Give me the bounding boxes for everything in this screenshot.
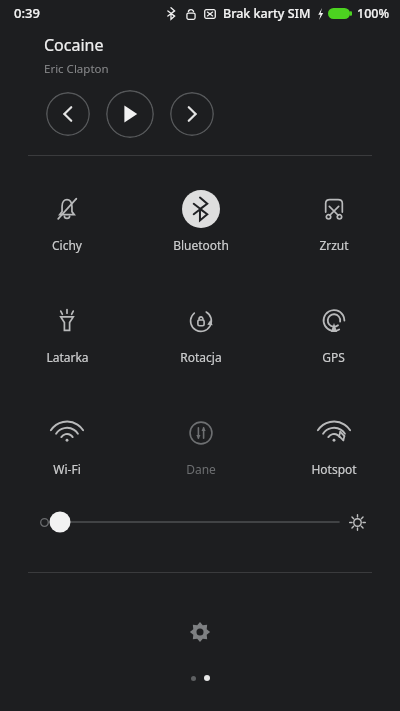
staticText: Hotspot — [311, 461, 357, 477]
button[interactable]: Hotspot — [267, 410, 400, 481]
button[interactable]: Dane — [134, 410, 267, 481]
staticText: Rotacja — [180, 349, 222, 365]
button[interactable]: Brightness — [40, 505, 366, 539]
button[interactable]: Previous — [46, 92, 90, 136]
button[interactable]: Play — [106, 90, 154, 138]
button[interactable]: Wi-Fi — [0, 410, 134, 481]
button[interactable]: Bluetooth — [134, 186, 267, 257]
other: Brightness — [349, 514, 366, 531]
button[interactable]: Latarka — [0, 298, 134, 369]
staticText: Cichy — [52, 237, 82, 253]
staticText: Dane — [186, 461, 216, 477]
button[interactable]: Zrzut — [267, 186, 400, 257]
button[interactable]: Cichy — [0, 186, 134, 257]
staticText: Brak karty SIM — [223, 5, 311, 22]
staticText: Wi-Fi — [53, 461, 81, 477]
staticText: Bluetooth — [173, 237, 229, 253]
staticText: Zrzut — [319, 237, 349, 253]
button[interactable]: Settings — [183, 615, 217, 649]
staticText: Latarka — [46, 349, 89, 365]
button[interactable]: GPS — [267, 298, 400, 369]
staticText: Cocaine — [44, 34, 104, 56]
button[interactable]: Next — [170, 92, 214, 136]
staticText: 100% — [357, 5, 390, 22]
staticText: 0:39 — [14, 4, 40, 22]
staticText: GPS — [322, 349, 345, 365]
button[interactable]: Rotacja — [134, 298, 267, 369]
staticText: Eric Clapton — [44, 61, 109, 77]
